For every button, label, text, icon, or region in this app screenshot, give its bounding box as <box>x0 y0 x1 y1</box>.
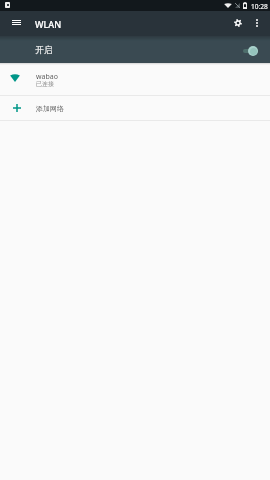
button[interactable]: More options <box>246 12 268 34</box>
button[interactable]: Settings <box>227 12 249 34</box>
staticText: wabao <box>36 72 58 82</box>
staticText: 已连接 <box>36 80 54 88</box>
button[interactable]: Wi-Fi on <box>240 43 261 59</box>
staticText: 开启 <box>35 45 53 56</box>
staticText: WLAN <box>35 18 62 30</box>
staticText: 10:28 <box>251 2 268 11</box>
button[interactable]: wabao <box>0 63 270 95</box>
button[interactable]: 添加网络 <box>0 95 270 120</box>
staticText: 添加网络 <box>36 104 64 113</box>
button[interactable]: Open navigation menu <box>5 12 27 34</box>
button[interactable] <box>0 36 270 63</box>
